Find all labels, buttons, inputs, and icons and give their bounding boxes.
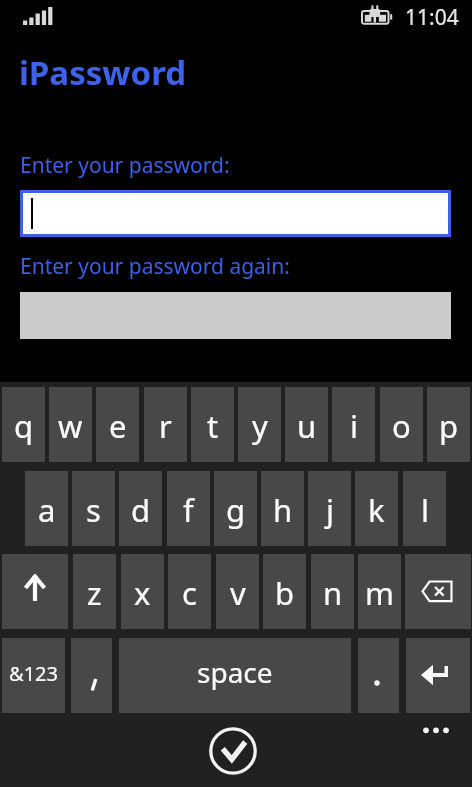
staticText: j (326, 489, 334, 531)
button[interactable]: e (96, 387, 139, 462)
button[interactable]: v (216, 554, 259, 629)
button[interactable]: o (380, 387, 423, 462)
staticText: r (159, 405, 172, 447)
button[interactable]: h (261, 471, 304, 546)
staticText: space (197, 653, 273, 691)
staticText: 11:04 (405, 3, 459, 32)
staticText: m (365, 572, 394, 614)
staticText: t (207, 405, 219, 447)
button[interactable]: l (403, 471, 446, 546)
button[interactable]: x (121, 554, 164, 629)
button[interactable]: d (119, 471, 162, 546)
button[interactable]: z (73, 554, 116, 629)
staticText: p (439, 405, 459, 447)
button[interactable] (405, 554, 471, 629)
staticText: o (392, 405, 411, 447)
button[interactable]: f (167, 471, 210, 546)
button[interactable]: r (144, 387, 187, 462)
staticText: n (323, 572, 343, 614)
button[interactable]: n (311, 554, 354, 629)
staticText: y (252, 405, 268, 447)
staticText: h (273, 489, 293, 531)
staticText: e (109, 405, 127, 447)
button[interactable] (2, 554, 68, 629)
button[interactable] (416, 720, 456, 742)
staticText: Enter your password again: (20, 252, 290, 281)
staticText: z (87, 572, 102, 614)
button[interactable] (358, 638, 399, 713)
button[interactable]: t (191, 387, 234, 462)
staticText: s (86, 489, 101, 531)
staticText: b (275, 572, 295, 614)
button[interactable]: space (119, 638, 351, 713)
button[interactable]: i (332, 387, 375, 462)
button[interactable]: k (355, 471, 398, 546)
button[interactable]: p (427, 387, 470, 462)
staticText: d (131, 489, 151, 531)
button[interactable]: m (358, 554, 401, 629)
button[interactable]: q (2, 387, 45, 462)
button[interactable]: b (263, 554, 306, 629)
button[interactable]: c (168, 554, 211, 629)
staticText: f (183, 489, 194, 531)
staticText: Enter your password: (20, 151, 230, 180)
button[interactable]: &123 (2, 638, 65, 713)
button[interactable]: s (72, 471, 115, 546)
staticText: v (230, 572, 246, 614)
button[interactable]: w (49, 387, 92, 462)
staticText: a (38, 489, 56, 531)
button[interactable]: u (285, 387, 328, 462)
staticText: iPassword (19, 50, 187, 95)
button[interactable]: y (238, 387, 281, 462)
staticText: g (226, 489, 246, 531)
staticText: x (134, 572, 151, 614)
staticText: c (182, 572, 197, 614)
staticText: w (58, 405, 83, 447)
staticText: u (297, 405, 317, 447)
staticText: &123 (9, 660, 58, 687)
button[interactable]: g (214, 471, 257, 546)
staticText: i (350, 405, 358, 447)
button[interactable] (406, 638, 470, 713)
staticText: q (14, 405, 34, 447)
staticText: k (368, 489, 385, 531)
button[interactable] (20, 190, 451, 237)
button[interactable]: j (308, 471, 351, 546)
staticText: l (421, 489, 429, 531)
button[interactable] (71, 638, 112, 713)
button[interactable] (208, 726, 258, 776)
button[interactable]: a (25, 471, 68, 546)
